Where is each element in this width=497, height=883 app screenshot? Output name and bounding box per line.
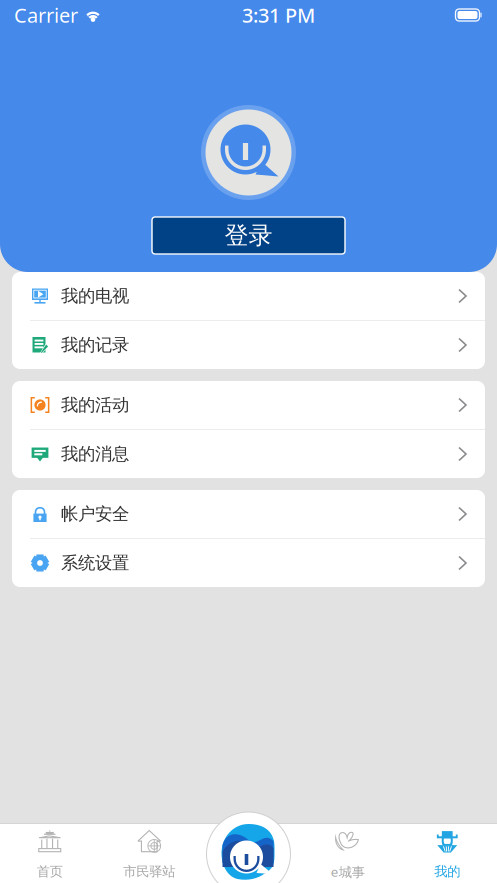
staticText: 3:31 PM bbox=[242, 2, 315, 28]
staticText: 我的活动 bbox=[61, 394, 129, 416]
staticText: 我的电视 bbox=[61, 285, 129, 307]
button[interactable]: 首页 bbox=[0, 824, 99, 883]
staticText: e城事 bbox=[331, 863, 365, 880]
staticText: 我的 bbox=[434, 863, 460, 880]
staticText: 我的记录 bbox=[61, 334, 129, 356]
button[interactable]: 首页 bbox=[206, 799, 290, 883]
button[interactable]: 我的消息 bbox=[12, 430, 485, 478]
staticText: 登录 bbox=[224, 221, 272, 250]
staticText: 市民驿站 bbox=[123, 863, 175, 880]
staticText: 我的消息 bbox=[61, 443, 129, 465]
button[interactable]: 帐户安全 bbox=[12, 490, 485, 538]
button[interactable]: 我的记录 bbox=[12, 321, 485, 369]
button[interactable]: 我的活动 bbox=[12, 381, 485, 429]
staticText: 帐户安全 bbox=[61, 503, 129, 525]
staticText: Carrier bbox=[14, 2, 78, 28]
button[interactable]: 我的电视 bbox=[12, 272, 485, 320]
button[interactable]: 市民驿站 bbox=[99, 824, 199, 883]
button[interactable]: 我的 bbox=[397, 824, 497, 883]
staticText: 首页 bbox=[37, 863, 63, 880]
button[interactable]: e城事 bbox=[298, 824, 397, 883]
staticText: 系统设置 bbox=[61, 552, 129, 574]
button[interactable]: 登录 bbox=[152, 217, 345, 254]
button[interactable]: 系统设置 bbox=[12, 539, 485, 587]
